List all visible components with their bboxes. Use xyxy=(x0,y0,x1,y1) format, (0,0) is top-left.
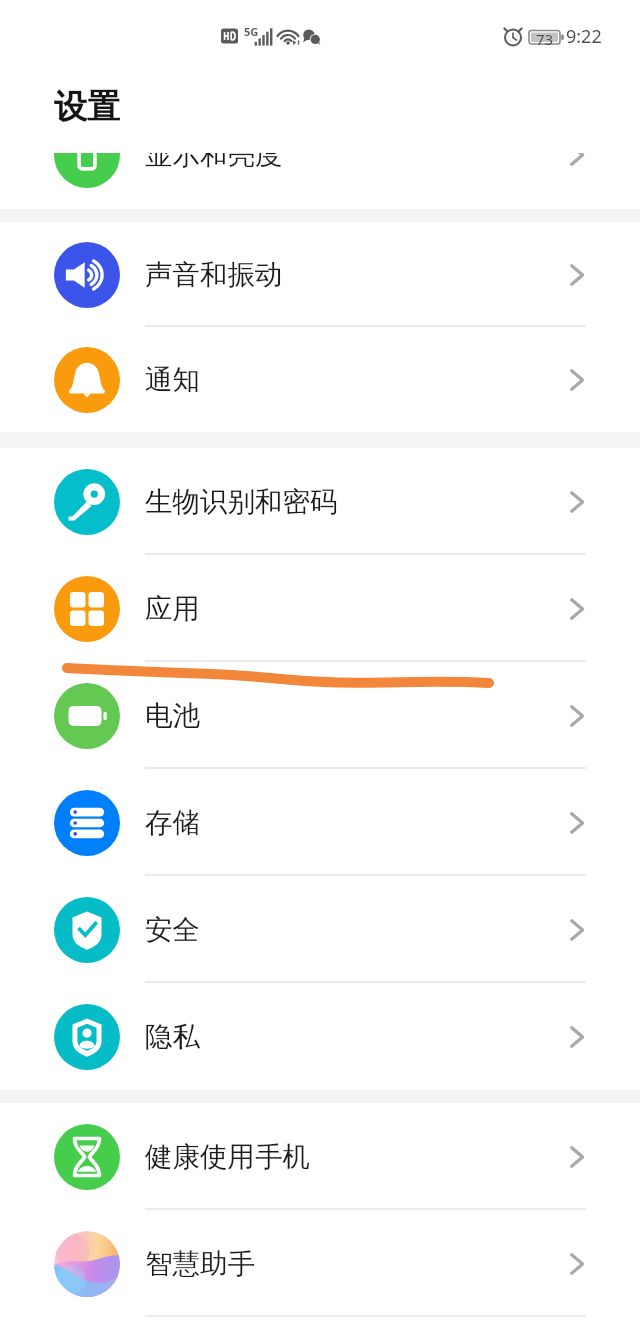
button[interactable]: 隐私 xyxy=(0,983,640,1090)
staticText: 显示和亮度 xyxy=(145,153,570,173)
staticText: 健康使用手机 xyxy=(145,1140,570,1175)
button[interactable]: 智慧助手 xyxy=(0,1210,640,1317)
staticText: 存储 xyxy=(145,806,570,841)
staticText: 智慧助手 xyxy=(145,1247,570,1282)
staticText: 应用 xyxy=(145,592,570,627)
button[interactable]: 生物识别和密码 xyxy=(0,448,640,555)
staticText: 安全 xyxy=(145,913,570,948)
staticText: 设置 xyxy=(54,86,120,128)
staticText: 73 xyxy=(536,29,554,49)
staticText: 电池 xyxy=(145,699,570,734)
button[interactable]: 电池 xyxy=(0,662,640,769)
button[interactable]: 存储 xyxy=(0,769,640,876)
staticText: 生物识别和密码 xyxy=(145,485,570,520)
staticText: 声音和振动 xyxy=(145,258,570,293)
button[interactable]: 显示和亮度 xyxy=(0,153,640,208)
button[interactable]: 应用 xyxy=(0,555,640,662)
staticText: 隐私 xyxy=(145,1020,570,1055)
button[interactable]: 安全 xyxy=(0,876,640,983)
staticText: 通知 xyxy=(145,363,570,398)
button[interactable]: 健康使用手机 xyxy=(0,1103,640,1210)
button[interactable]: 通知 xyxy=(0,327,640,432)
button[interactable]: 声音和振动 xyxy=(0,222,640,327)
staticText: 9:22 xyxy=(566,24,602,49)
staticText: 5G xyxy=(244,24,259,39)
